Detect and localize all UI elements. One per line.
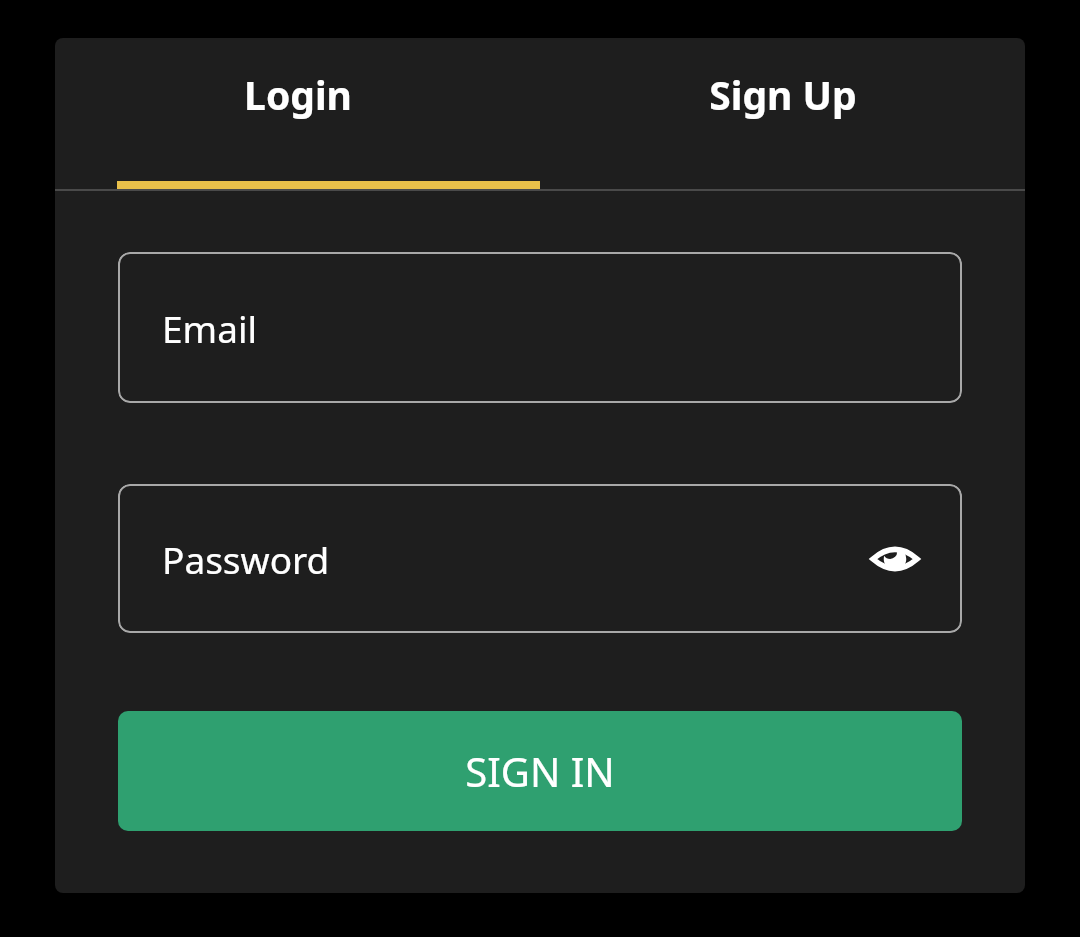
- button[interactable]: Password: [118, 484, 962, 633]
- staticText: Password: [162, 534, 330, 584]
- staticText: Login: [244, 68, 352, 121]
- staticText: Email: [162, 303, 258, 353]
- button[interactable]: Login: [55, 38, 540, 189]
- staticText: SIGN IN: [465, 744, 615, 798]
- button[interactable]: SIGN IN: [118, 711, 962, 831]
- staticText: Sign Up: [709, 68, 857, 121]
- button[interactable]: Email: [118, 252, 962, 403]
- button[interactable]: Show password: [864, 528, 926, 590]
- button[interactable]: Sign Up: [540, 38, 1025, 189]
